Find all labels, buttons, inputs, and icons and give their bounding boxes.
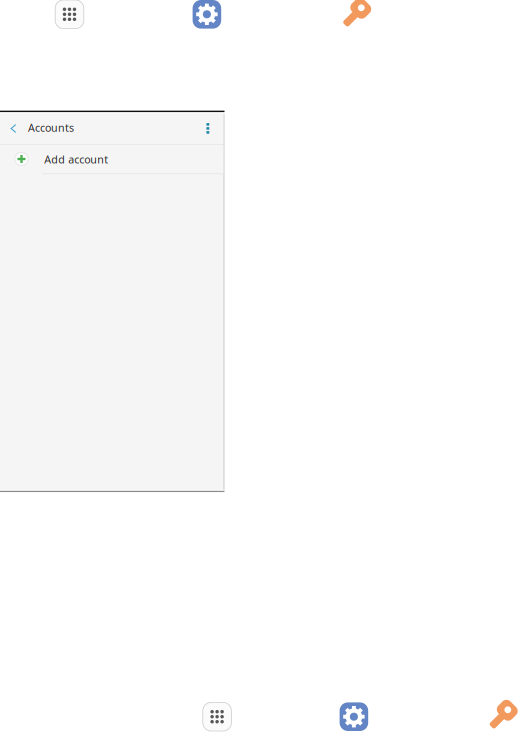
button[interactable]: Settings bbox=[193, 0, 221, 29]
button[interactable]: Apps bbox=[203, 702, 231, 731]
button[interactable]: Add account bbox=[0, 145, 223, 173]
button[interactable]: Apps bbox=[55, 0, 84, 29]
button[interactable]: Accounts bbox=[0, 113, 223, 144]
staticText: Accounts bbox=[28, 121, 74, 135]
button[interactable]: Password bbox=[336, 0, 365, 29]
button[interactable]: Settings bbox=[340, 702, 368, 731]
button[interactable]: Password bbox=[483, 702, 512, 731]
staticText: Add account bbox=[44, 152, 108, 166]
